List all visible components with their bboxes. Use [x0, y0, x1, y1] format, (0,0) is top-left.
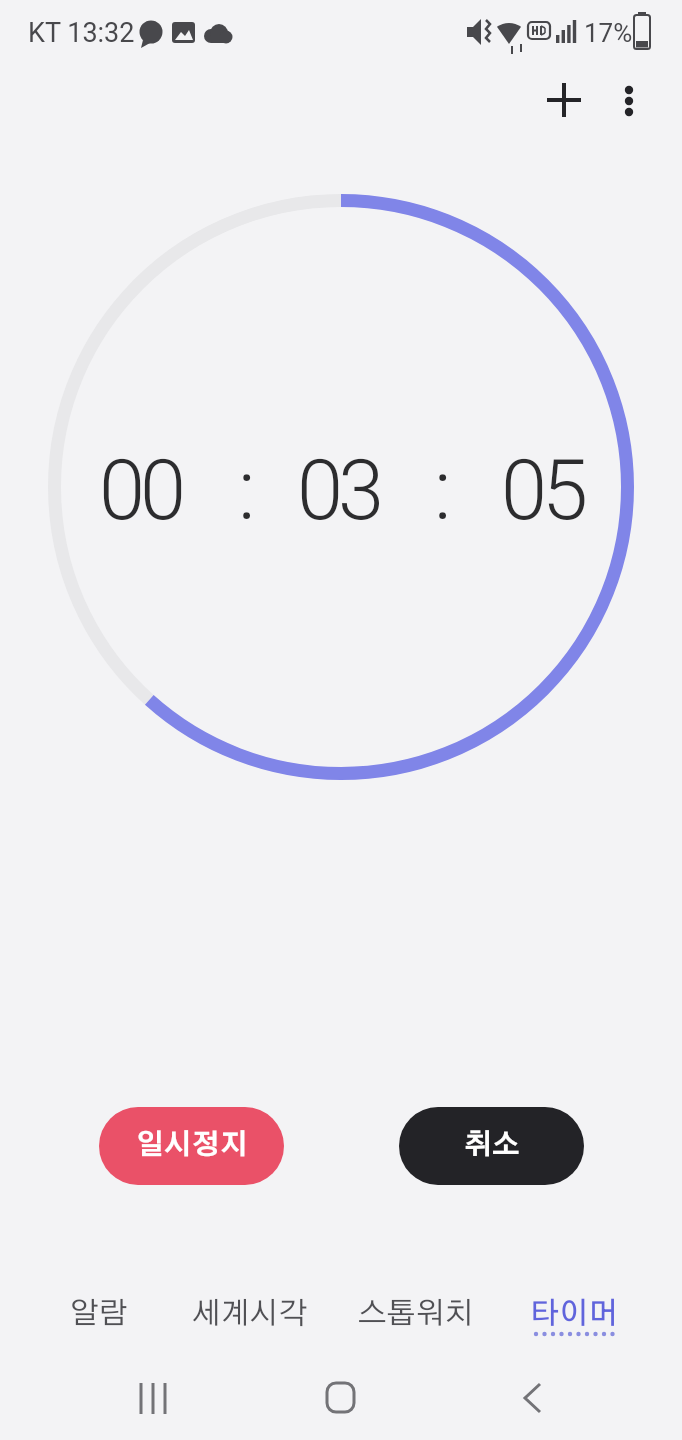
- staticText: 알람: [70, 1299, 128, 1329]
- button[interactable]: 세계시각: [175, 1292, 325, 1336]
- button[interactable]: 타이머: [499, 1292, 649, 1336]
- button[interactable]: 스톱워치: [341, 1292, 491, 1336]
- staticText: 타이머: [530, 1299, 618, 1329]
- button[interactable]: 취소: [399, 1107, 584, 1185]
- staticText: 일시정지: [136, 1132, 248, 1160]
- button[interactable]: [120, 1368, 186, 1428]
- button[interactable]: [500, 1368, 566, 1428]
- staticText: 17%: [584, 18, 633, 48]
- staticText: 00: [99, 442, 182, 539]
- staticText: 스톱워치: [358, 1299, 474, 1329]
- button[interactable]: 일시정지: [99, 1107, 284, 1185]
- staticText: 03: [297, 442, 380, 539]
- button[interactable]: [308, 1368, 374, 1428]
- staticText: 05: [501, 442, 584, 539]
- button[interactable]: [604, 76, 654, 126]
- staticText: 세계시각: [192, 1299, 308, 1329]
- staticText: KT 13:32: [28, 17, 135, 49]
- button[interactable]: 알람: [24, 1292, 174, 1336]
- staticText: :: [238, 442, 251, 539]
- staticText: :: [434, 442, 447, 539]
- button[interactable]: [534, 70, 594, 130]
- staticText: 취소: [464, 1132, 520, 1160]
